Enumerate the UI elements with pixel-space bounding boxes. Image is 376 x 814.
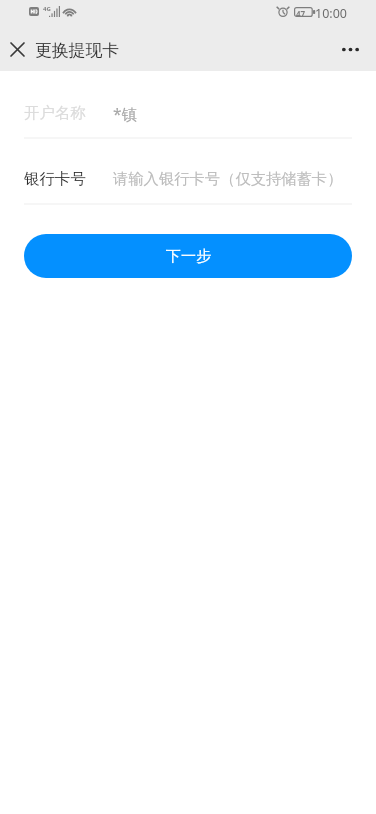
button[interactable]: More options <box>335 35 366 64</box>
staticText: 银行卡号 <box>24 169 86 189</box>
button[interactable]: 开户名称 <box>0 71 376 137</box>
staticText: 47 <box>296 8 306 19</box>
staticText: *镇 <box>113 103 138 124</box>
button[interactable]: 下一步 <box>24 234 352 278</box>
button[interactable]: 银行卡号 <box>0 137 376 203</box>
staticText: 10:00 <box>315 5 347 22</box>
staticText: 请输入银行卡号（仅支持储蓄卡） <box>113 169 343 188</box>
staticText: 更换提现卡 <box>35 40 119 61</box>
staticText: 开户名称 <box>24 103 86 123</box>
button[interactable]: Close <box>3 35 32 64</box>
staticText: 下一步 <box>166 247 211 266</box>
staticText: 4G <box>43 5 51 13</box>
